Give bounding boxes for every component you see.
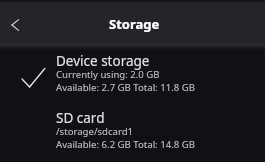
staticText: Currently using: 2.0 GB xyxy=(56,68,160,81)
other: Selected xyxy=(21,68,47,94)
staticText: Available: 6.2 GB Total: 14.8 GB xyxy=(56,138,195,151)
button[interactable]: SD card xyxy=(0,101,265,158)
button[interactable]: Back xyxy=(0,5,30,38)
staticText: SD card xyxy=(56,109,105,127)
staticText: Storage xyxy=(109,15,160,33)
staticText: Device storage xyxy=(56,52,150,70)
button[interactable]: Selected xyxy=(0,44,265,101)
staticText: Available: 2.7 GB Total: 11.8 GB xyxy=(56,81,195,94)
staticText: /storage/sdcard1 xyxy=(56,125,134,138)
